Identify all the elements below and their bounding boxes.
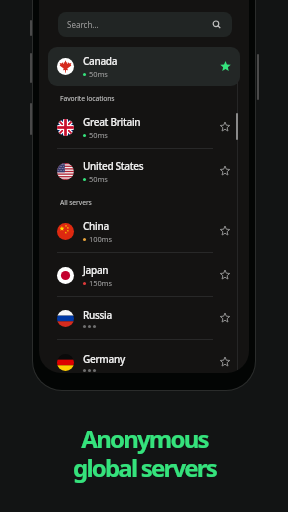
other: Add to favorites <box>220 122 230 132</box>
other: Favorite <box>220 61 231 72</box>
button[interactable]: Search... <box>58 12 232 37</box>
other: Search <box>212 20 221 29</box>
staticText: Japan <box>83 263 109 277</box>
staticText: Anonymous global servers <box>73 422 216 484</box>
staticText: 150ms <box>89 278 112 288</box>
staticText: Canada <box>83 54 118 68</box>
staticText: 50ms <box>89 69 108 79</box>
staticText: United States <box>83 159 144 173</box>
staticText: 50ms <box>89 174 108 184</box>
button[interactable]: Russia <box>39 296 249 340</box>
other: Add to favorites <box>220 166 230 176</box>
staticText: China <box>83 219 109 233</box>
button[interactable]: United States <box>39 149 249 193</box>
button[interactable]: China <box>39 209 249 253</box>
staticText: Germany <box>83 352 125 366</box>
staticText: 100ms <box>89 234 112 244</box>
staticText: Russia <box>83 308 112 322</box>
button[interactable]: Germany <box>39 340 249 373</box>
other: Add to favorites <box>220 313 230 323</box>
other: Add to favorites <box>220 357 230 367</box>
button[interactable]: Canada <box>48 47 240 86</box>
other: Add to favorites <box>220 226 230 236</box>
staticText: Search... <box>67 19 99 30</box>
button[interactable]: Japan <box>39 253 249 297</box>
staticText: Great Britain <box>83 115 141 129</box>
staticText: Favorite locations <box>60 94 115 103</box>
staticText: 50ms <box>89 130 108 140</box>
button[interactable]: Great Britain <box>39 105 249 149</box>
other: Add to favorites <box>220 270 230 280</box>
staticText: All servers <box>60 198 92 207</box>
